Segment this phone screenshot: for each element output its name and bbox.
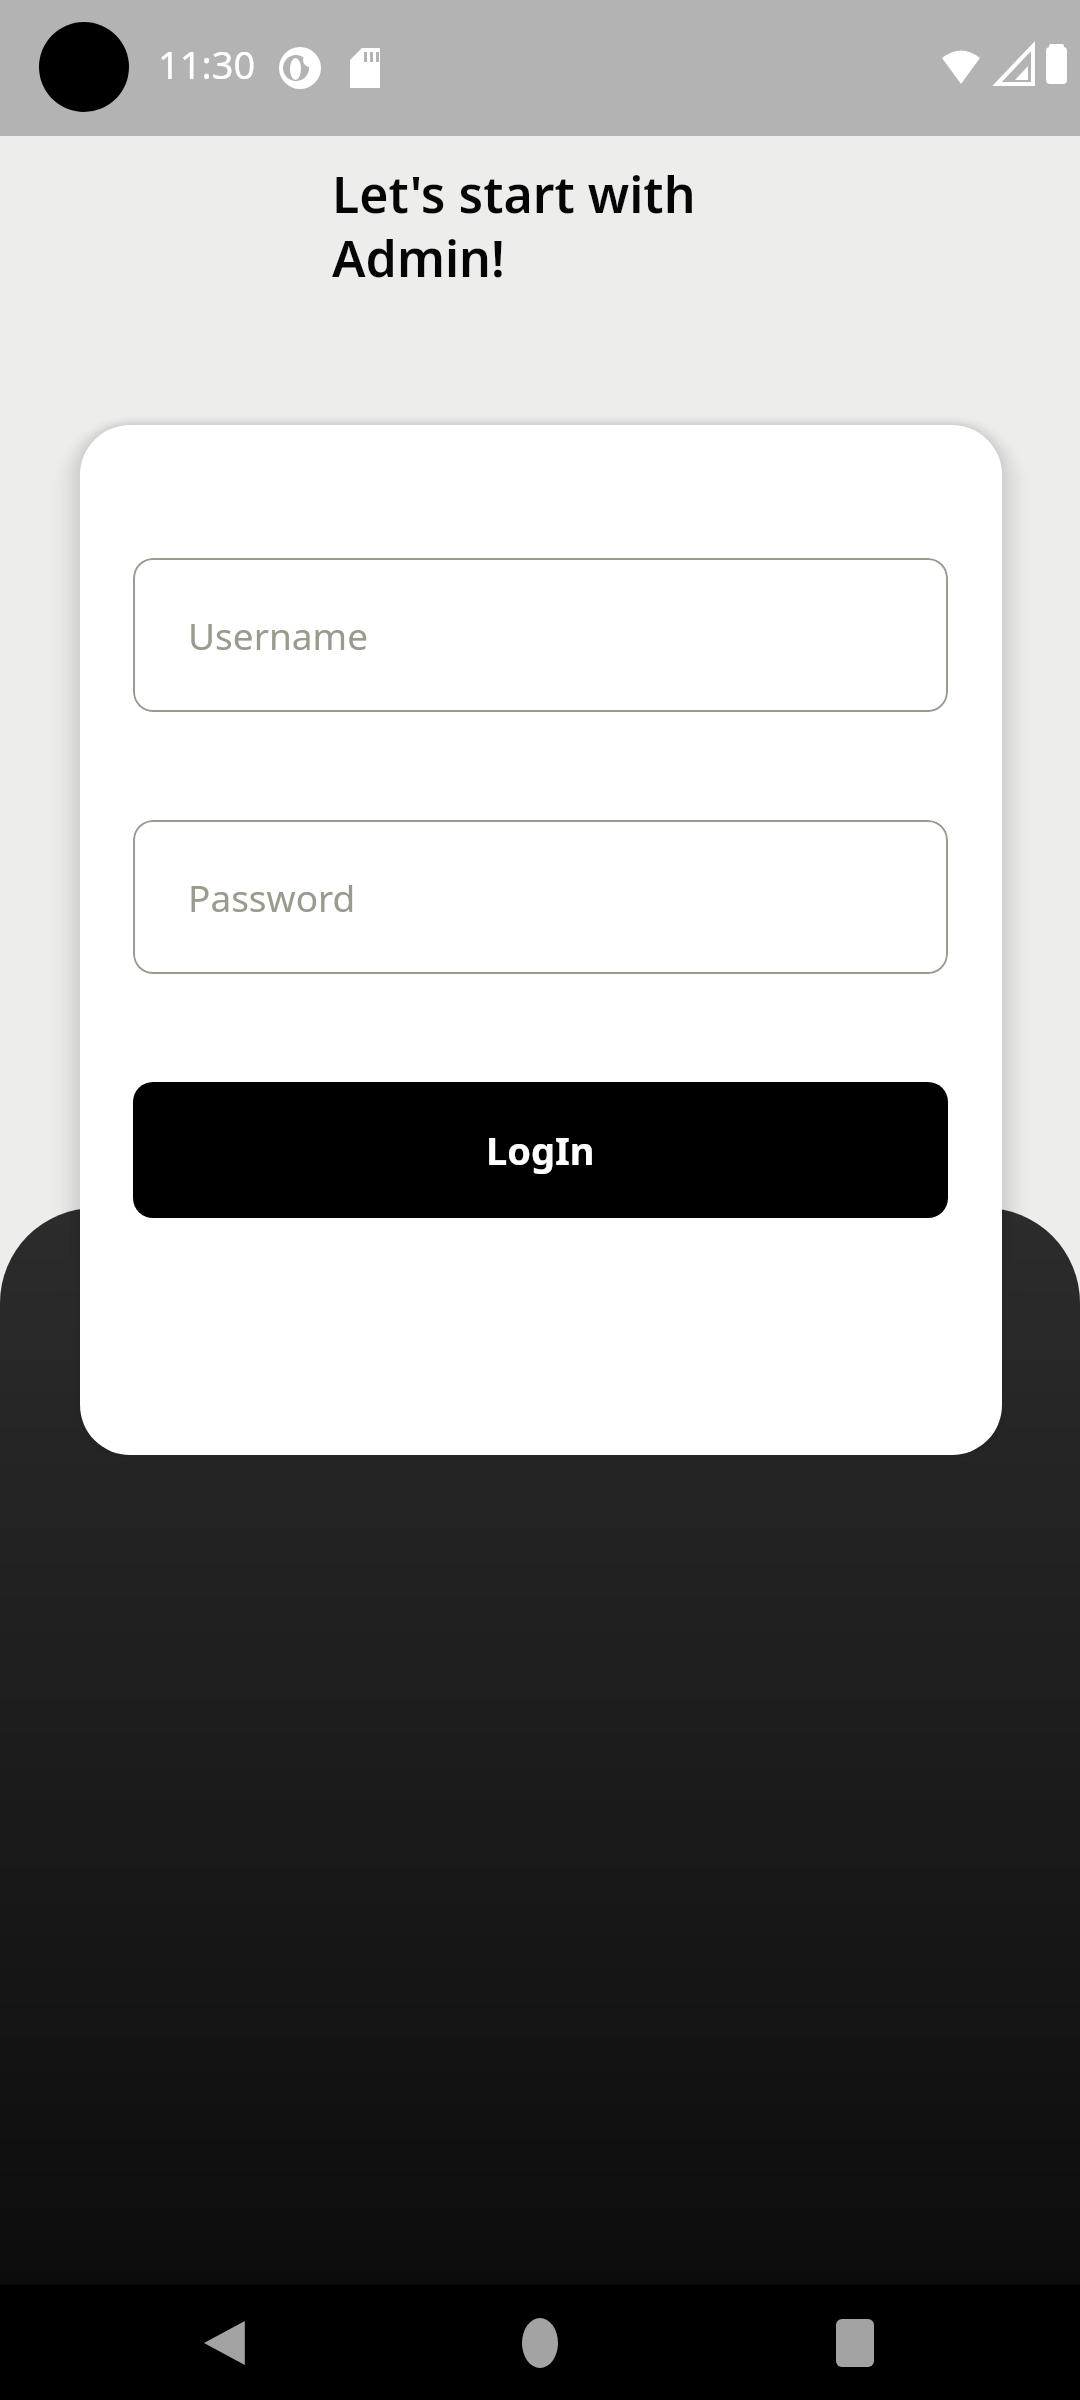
- button[interactable]: Home: [475, 2285, 605, 2400]
- button[interactable]: Password: [133, 820, 948, 974]
- staticText: Let's start with Admin!: [332, 160, 852, 292]
- staticText: Username: [188, 610, 369, 660]
- staticText: 11:30: [158, 38, 256, 90]
- staticText: LogIn: [486, 1124, 595, 1176]
- button[interactable]: LogIn: [133, 1082, 948, 1218]
- button[interactable]: Back: [160, 2285, 290, 2400]
- button[interactable]: Username: [133, 558, 948, 712]
- staticText: Password: [188, 872, 356, 922]
- button[interactable]: Recent apps: [790, 2285, 920, 2400]
